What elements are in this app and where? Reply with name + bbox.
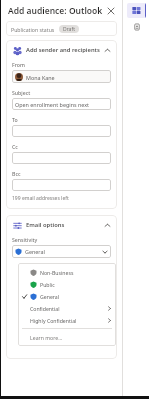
staticText: Publication status (11, 26, 55, 33)
staticText: 199 email addresses left (12, 195, 69, 202)
button[interactable]: Public (18, 278, 116, 290)
button[interactable]: General (18, 290, 116, 302)
staticText: Subject (12, 89, 31, 96)
staticText: Bcc (12, 170, 21, 177)
button[interactable]: Confidential (18, 302, 116, 314)
button[interactable]: Open enrollment begins next month! (12, 98, 111, 110)
staticText: Highly Confidential (30, 317, 77, 324)
staticText: Non-Business (40, 269, 74, 276)
staticText: To (12, 116, 18, 123)
button[interactable] (12, 125, 111, 137)
staticText: Public (40, 281, 55, 288)
staticText: Open enrollment begins next month! (15, 101, 108, 108)
button[interactable]: Add sender and recipients (12, 45, 111, 55)
button[interactable]: Audience (127, 3, 146, 18)
staticText: Sensitivity (12, 236, 38, 243)
staticText: Confidential (30, 305, 60, 312)
staticText: General (40, 293, 60, 300)
staticText: Email options (26, 221, 65, 229)
staticText: Cc (12, 143, 18, 150)
staticText: General (25, 248, 45, 255)
staticText: From (12, 61, 25, 68)
staticText: Add sender and recipients (26, 46, 100, 54)
button[interactable] (12, 179, 111, 191)
staticText: Learn more... (30, 334, 63, 341)
staticText: Draft (63, 26, 75, 33)
button[interactable] (12, 152, 111, 164)
button[interactable]: Learn more... (18, 331, 116, 343)
button[interactable]: General (12, 245, 111, 258)
button[interactable]: Mona Kane (12, 70, 111, 83)
button[interactable]: Highly Confidential (18, 314, 116, 326)
button[interactable]: Settings (127, 20, 146, 34)
button[interactable]: Email options (12, 220, 111, 230)
button[interactable]: Close (104, 4, 117, 17)
staticText: Mona Kane (26, 74, 55, 81)
button[interactable]: Non-Business (18, 266, 116, 278)
staticText: Add audience: Outlook (8, 5, 103, 17)
